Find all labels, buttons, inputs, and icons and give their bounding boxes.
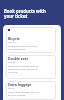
staticText: Bicycle (8, 36, 20, 41)
button[interactable]: Extra luggage (6, 81, 56, 100)
button[interactable]: Double seat (6, 55, 56, 79)
staticText: Book products with your ticket (4, 8, 46, 19)
staticText: CHF 12 (8, 41, 16, 44)
staticText: Carry extra luggage with you on your jou… (8, 91, 40, 97)
staticText: Extra luggage (8, 82, 32, 87)
button[interactable]: Bicycle (6, 27, 56, 53)
staticText: Book the seat beside you for more space … (8, 65, 39, 74)
staticText: CHF 20 (8, 61, 16, 64)
staticText: Double seat (8, 56, 29, 61)
staticText: CHF 8 (8, 87, 15, 90)
staticText: Book space for your bicycle on your jour… (8, 45, 38, 51)
